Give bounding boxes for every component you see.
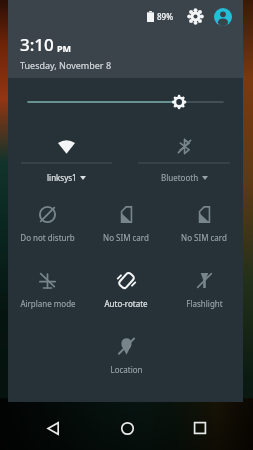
button[interactable]: Home — [107, 408, 147, 448]
staticText: Airplane mode — [20, 298, 76, 309]
staticText: Tuesday, November 8 — [20, 59, 112, 71]
staticText: Location — [110, 364, 143, 375]
staticText: 3:10 — [20, 33, 54, 56]
button[interactable]: Back — [33, 408, 73, 448]
button[interactable]: Do not disturb — [8, 192, 87, 258]
button[interactable]: No SIM card — [87, 192, 165, 258]
button[interactable]: Brightness — [8, 78, 243, 126]
button[interactable]: Flashlight — [165, 258, 243, 324]
staticText: PM — [57, 42, 72, 54]
staticText: Do not disturb — [20, 232, 75, 243]
staticText: linksys1 — [47, 172, 77, 183]
staticText: No SIM card — [103, 232, 149, 243]
staticText: 89% — [157, 11, 173, 22]
button[interactable]: Airplane mode — [8, 258, 87, 324]
button[interactable]: Settings — [185, 6, 205, 26]
button[interactable]: Recents — [180, 408, 220, 448]
staticText: Flashlight — [186, 298, 223, 309]
button[interactable]: Bluetooth — [125, 126, 243, 192]
staticText: Auto-rotate — [104, 298, 148, 309]
button[interactable]: Auto-rotate — [87, 258, 165, 324]
button[interactable]: Wi-Fi — [8, 126, 125, 192]
button[interactable]: No SIM card — [165, 192, 243, 258]
button[interactable]: Location — [87, 324, 165, 390]
staticText: No SIM card — [181, 232, 227, 243]
staticText: Bluetooth — [161, 172, 199, 183]
button[interactable]: User profile — [212, 6, 233, 27]
